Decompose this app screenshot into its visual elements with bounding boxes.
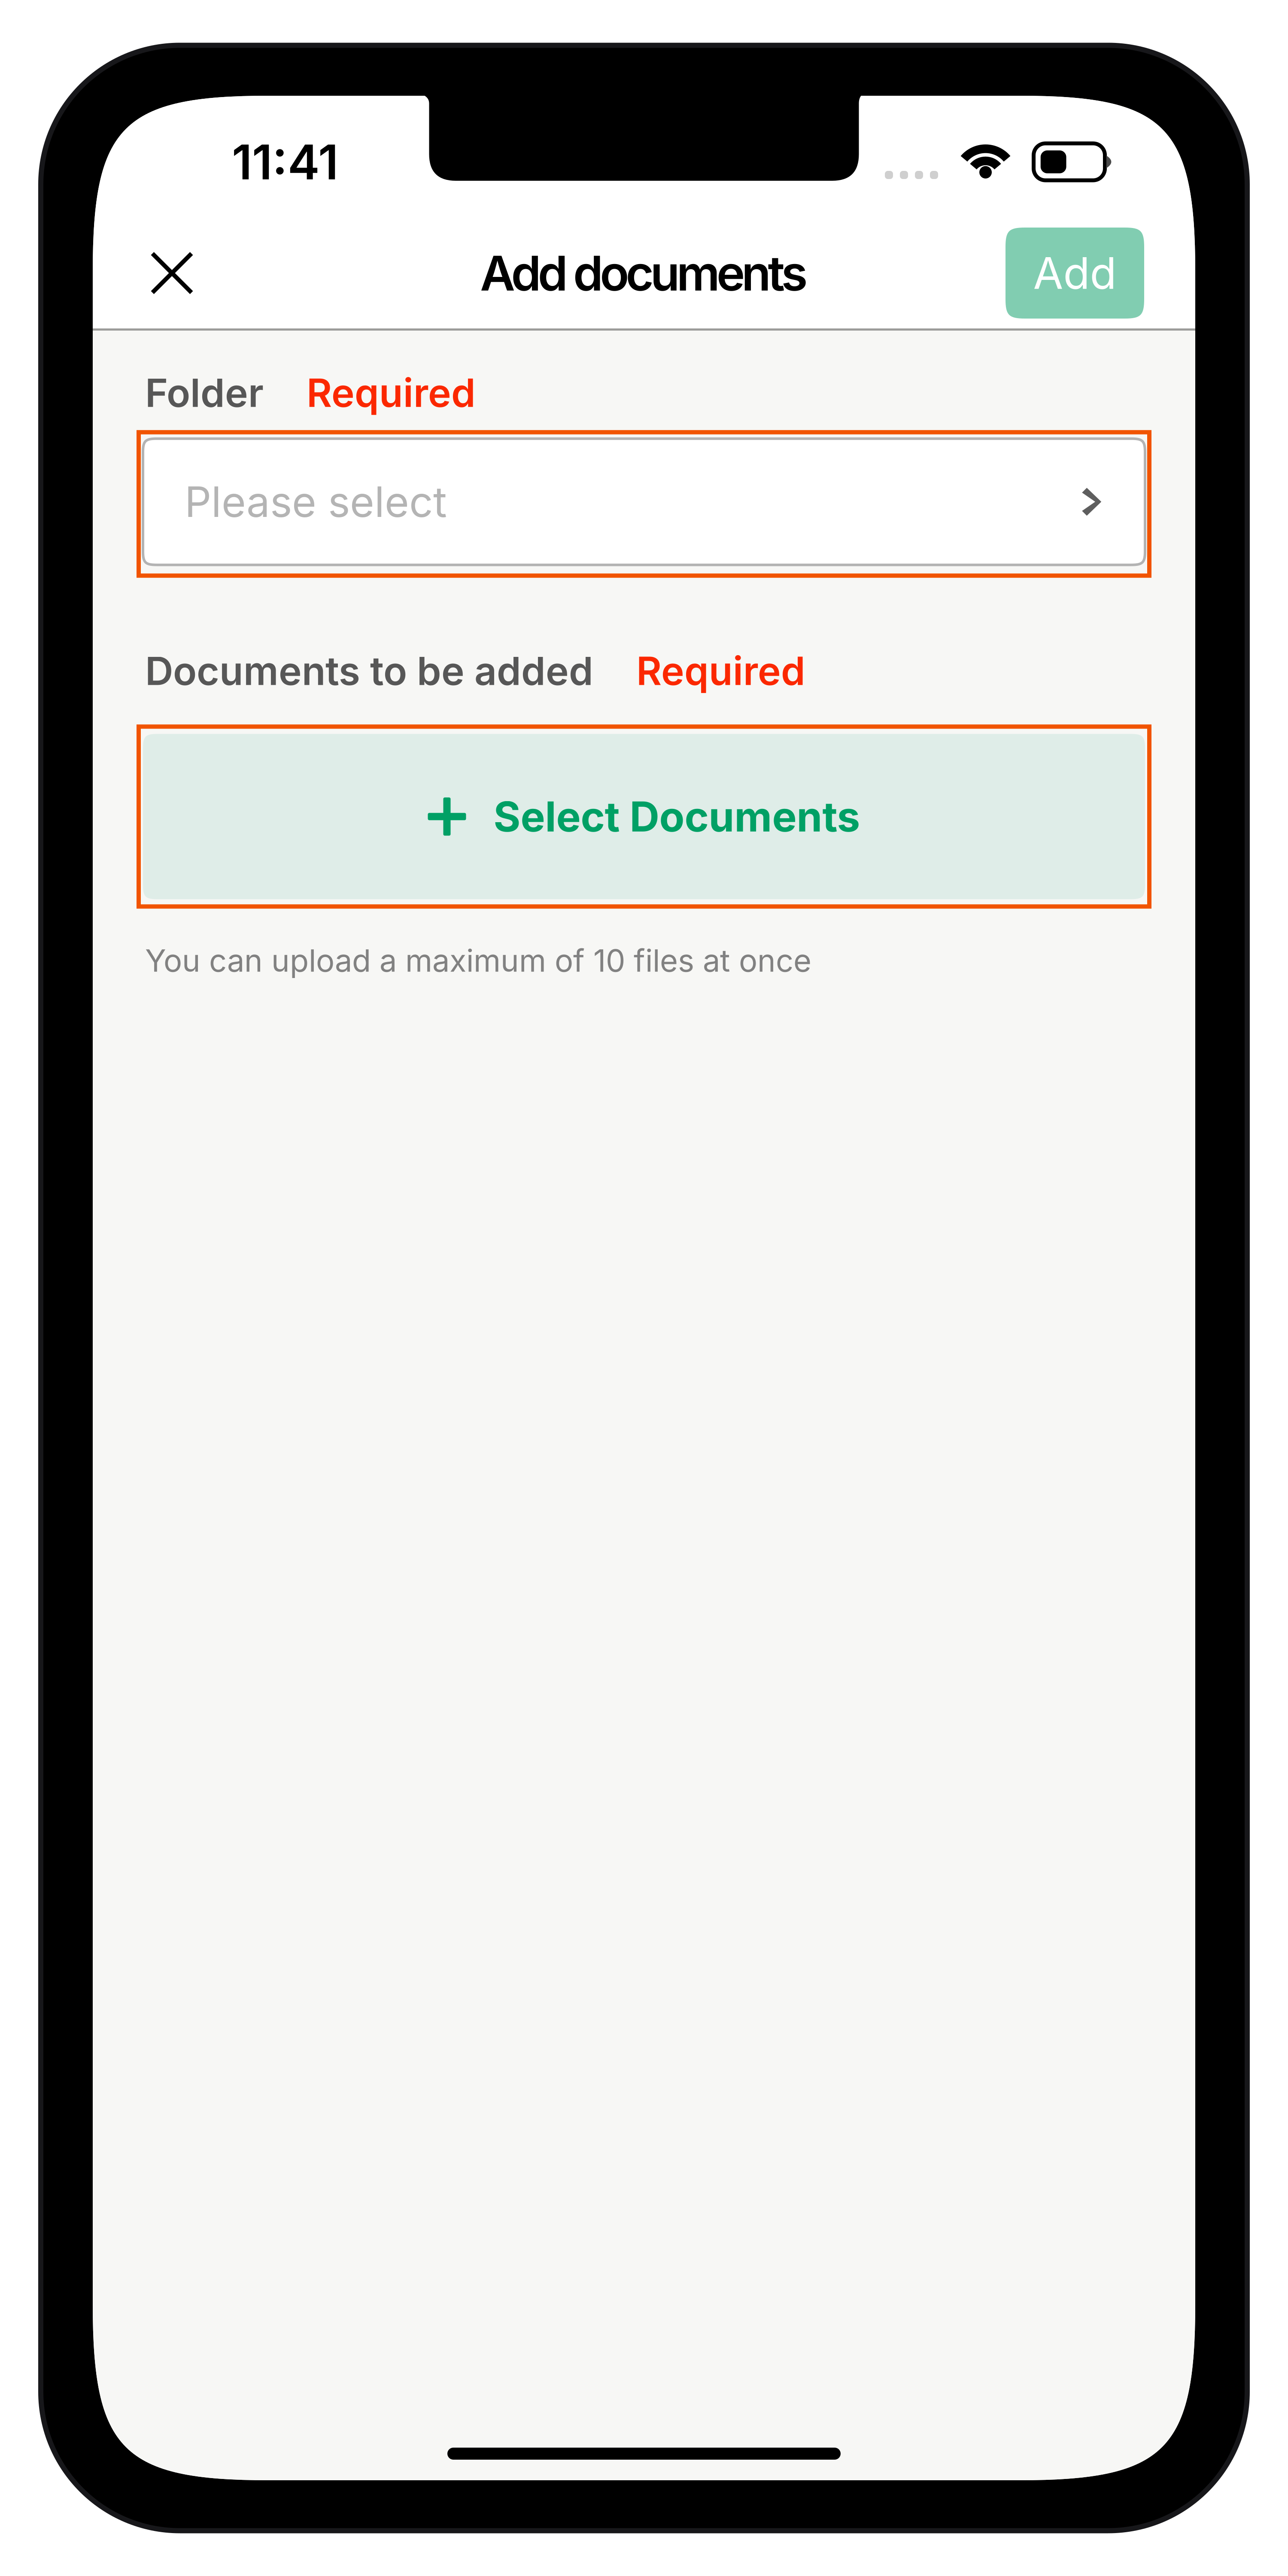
staticText: Add documents: [480, 244, 808, 302]
staticText: Please select: [185, 476, 447, 527]
staticText: 11:41: [232, 133, 338, 191]
staticText: Add: [1033, 247, 1116, 299]
staticText: Select Documents: [494, 792, 860, 841]
staticText: Documents to be added: [145, 647, 593, 694]
staticText: Folder: [145, 369, 264, 416]
staticText: Required: [307, 369, 476, 416]
button[interactable]: Select Documents: [139, 727, 1149, 906]
button[interactable]: Add: [1005, 228, 1144, 319]
button[interactable]: Please select: [139, 432, 1149, 576]
button[interactable]: Close: [111, 228, 233, 318]
staticText: Required: [636, 647, 805, 694]
staticText: You can upload a maximum of 10 files at …: [145, 942, 811, 979]
